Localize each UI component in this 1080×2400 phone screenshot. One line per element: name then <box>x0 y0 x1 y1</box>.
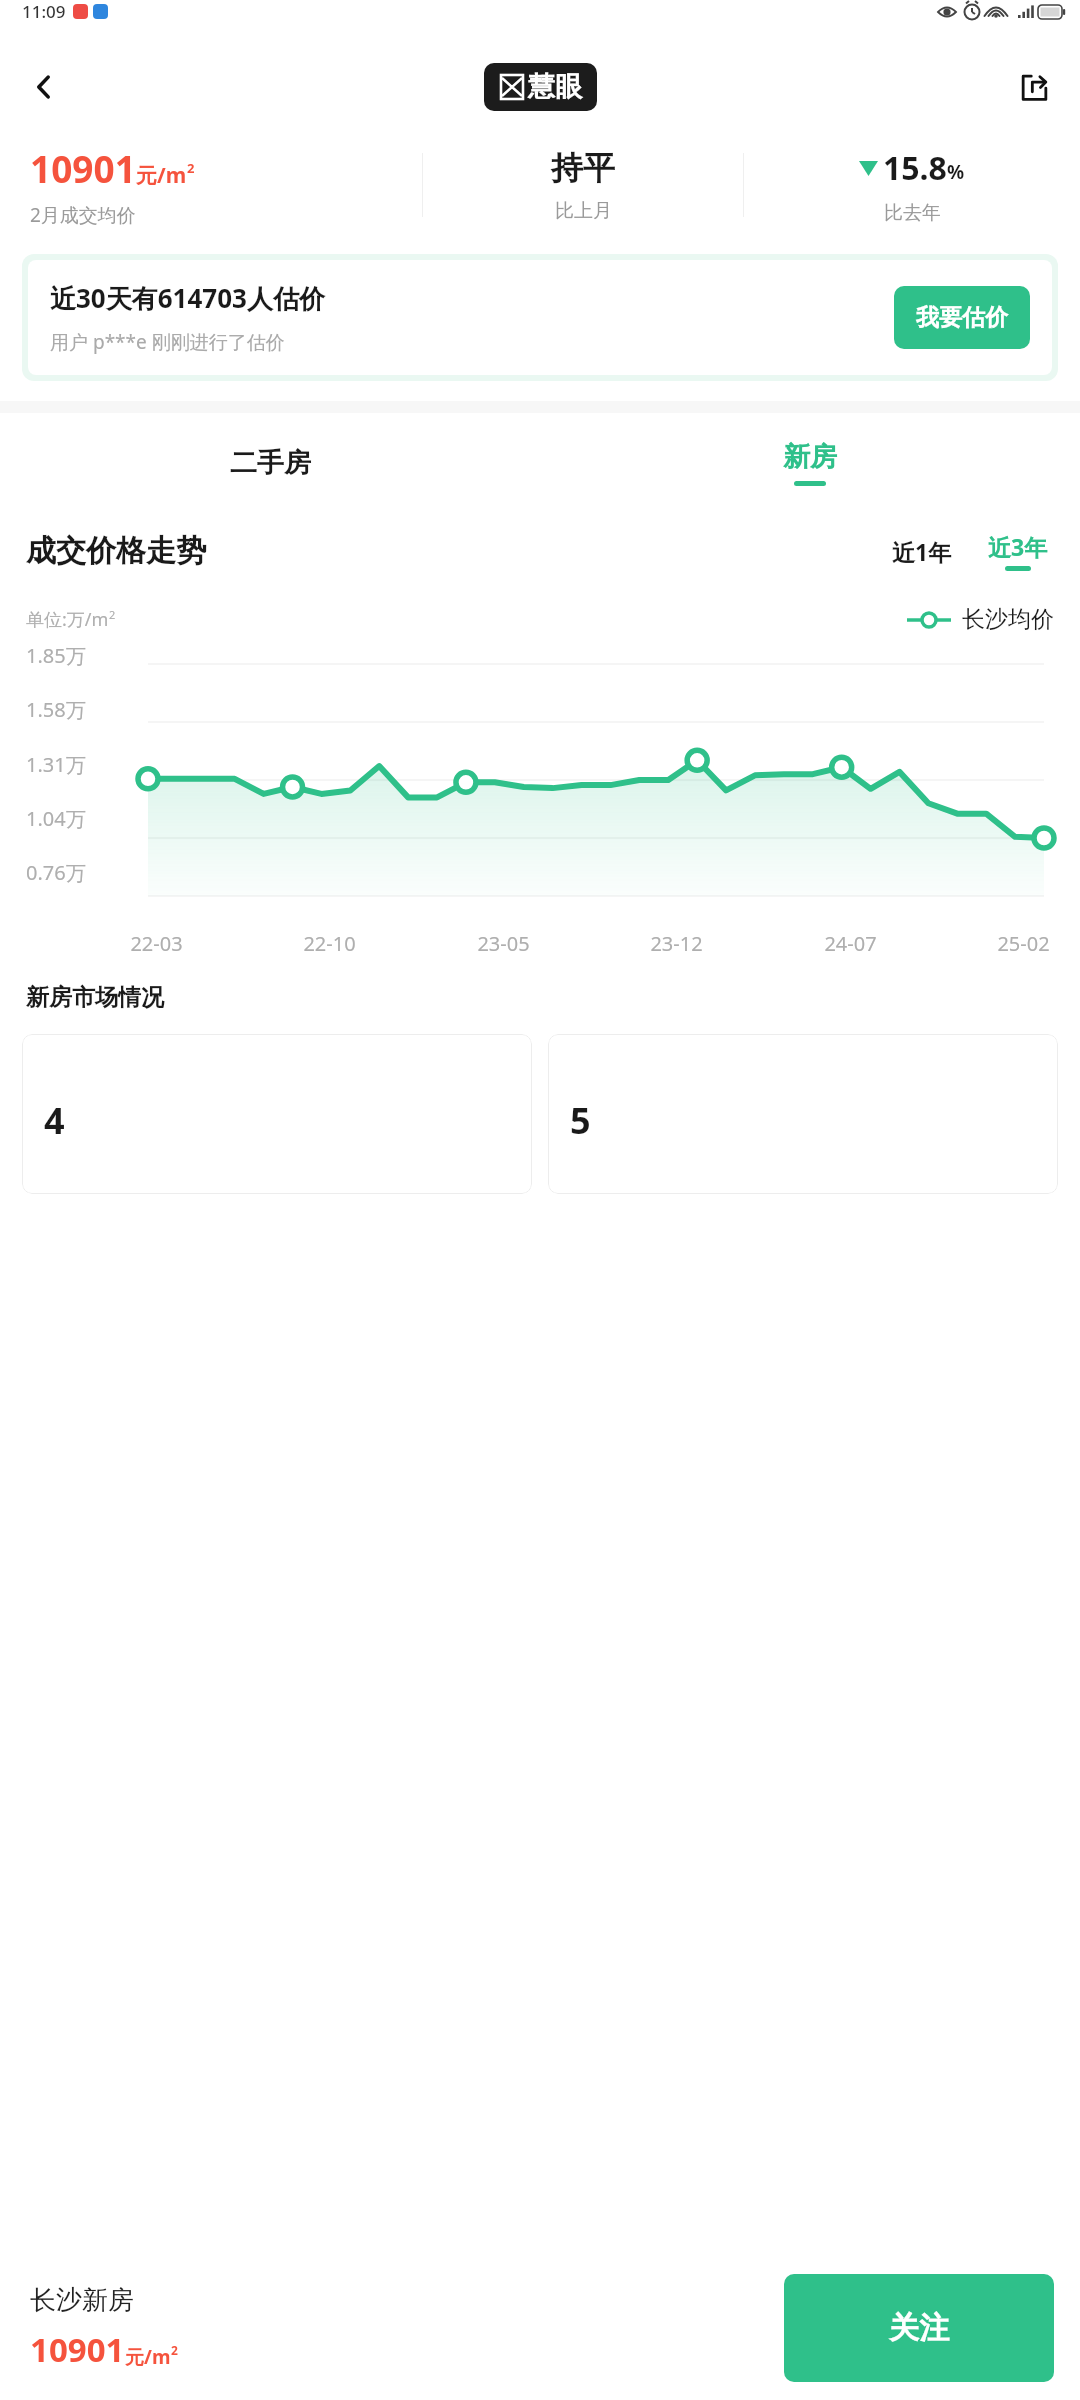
staticText: 23-12 <box>650 930 703 957</box>
button[interactable]: 4 <box>22 1034 532 1194</box>
staticText: 25-02 <box>997 930 1050 957</box>
button[interactable]: 我要估价 <box>894 286 1030 349</box>
staticText: % <box>947 159 965 185</box>
staticText: 单位:万/m <box>26 607 109 632</box>
staticText: 我要估价 <box>916 303 1008 332</box>
staticText: 10901 <box>30 2327 125 2372</box>
staticText: 近30天有614703人估价 <box>50 280 325 316</box>
staticText: 2月成交均价 <box>30 202 136 228</box>
staticText: 2 <box>187 159 195 177</box>
staticText: 1.85万 <box>26 642 86 669</box>
staticText: 元/m <box>136 161 187 190</box>
staticText: 元/m <box>125 2344 171 2370</box>
button[interactable]: 近3年 <box>982 525 1054 577</box>
staticText: 新房市场情况 <box>26 983 164 1012</box>
staticText: 近3年 <box>988 531 1048 562</box>
staticText: 1.31万 <box>26 751 86 778</box>
staticText: 用户 p***e 刚刚进行了估价 <box>50 329 285 355</box>
button[interactable]: 5 <box>548 1034 1058 1194</box>
button[interactable]: 近30天有614703人估价 <box>28 260 1052 375</box>
staticText: 4 <box>44 1096 65 1145</box>
staticText: 慧眼 <box>528 70 582 104</box>
staticText: 22-10 <box>303 930 356 957</box>
staticText: 5 <box>570 1096 591 1145</box>
staticText: 10901 <box>30 143 136 193</box>
button[interactable]: 近1年 <box>880 530 964 573</box>
staticText: 长沙新房 <box>30 2284 134 2317</box>
staticText: 长沙均价 <box>962 605 1054 634</box>
staticText: 24-07 <box>824 930 877 957</box>
button[interactable]: Back <box>18 61 70 113</box>
staticText: 2 <box>109 607 116 622</box>
staticText: 持平 <box>551 148 615 188</box>
staticText: 2 <box>171 2342 178 2358</box>
staticText: 比上月 <box>555 199 612 223</box>
staticText: 新房 <box>783 440 837 474</box>
staticText: 15.8 <box>883 146 947 190</box>
staticText: 关注 <box>889 2309 949 2347</box>
staticText: 近1年 <box>892 536 952 567</box>
staticText: 23-05 <box>477 930 530 957</box>
button[interactable]: 二手房 <box>200 436 341 490</box>
staticText: 二手房 <box>230 446 311 480</box>
button[interactable]: 慧眼 <box>484 63 597 111</box>
button[interactable]: 关注 <box>784 2274 1054 2382</box>
staticText: 1.04万 <box>26 805 86 832</box>
staticText: 比去年 <box>884 201 941 225</box>
button[interactable]: Share <box>1008 61 1060 113</box>
button[interactable]: 新房 <box>753 430 867 496</box>
staticText: 11:09 <box>22 0 66 23</box>
staticText: 0.76万 <box>26 859 86 886</box>
staticText: 22-03 <box>130 930 183 957</box>
staticText: 1.58万 <box>26 696 86 723</box>
staticText: 成交价格走势 <box>26 532 206 570</box>
